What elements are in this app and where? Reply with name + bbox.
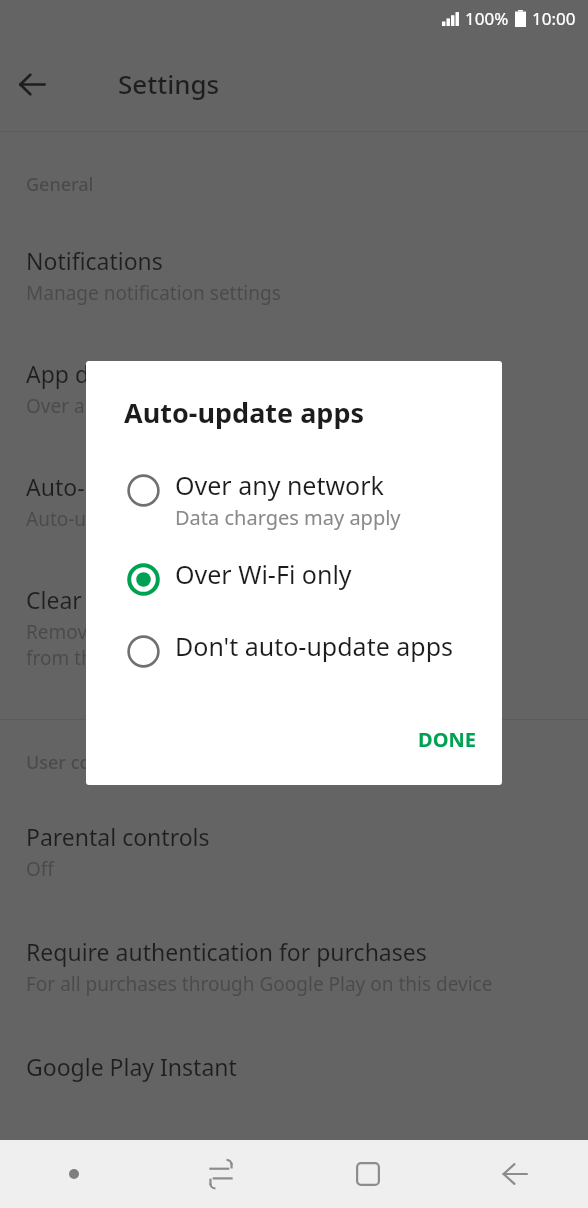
staticText: Over any network [175, 468, 384, 502]
staticText: Data charges may apply [175, 504, 401, 531]
button[interactable]: Back [0, 52, 64, 116]
staticText: App download preference [26, 358, 306, 389]
button[interactable]: Over Wi-Fi only [86, 554, 502, 604]
button[interactable]: Home [294, 1140, 441, 1208]
staticText: Over any network [26, 393, 185, 419]
staticText: 100% [465, 7, 509, 30]
button[interactable]: App download preference [0, 344, 588, 433]
staticText: General [26, 172, 94, 197]
staticText: Google Play Instant [26, 1051, 237, 1082]
staticText: Auto-update apps over Wi-Fi only [26, 506, 322, 532]
button[interactable]: Over any network [86, 465, 502, 540]
button[interactable]: Notifications [0, 231, 588, 320]
staticText: Auto-update apps [124, 394, 365, 431]
staticText: For all purchases through Google Play on… [26, 971, 493, 997]
button[interactable]: Clear local search history [0, 570, 588, 685]
button[interactable]: Parental controls [0, 807, 588, 896]
staticText: Over Wi-Fi only [175, 557, 352, 591]
button[interactable]: Don't auto-update apps [86, 626, 502, 676]
button[interactable]: Recent apps [147, 1140, 294, 1208]
staticText: 10:00 [532, 7, 576, 30]
button[interactable]: Require authentication for purchases [0, 922, 588, 1011]
button[interactable]: DONE [392, 716, 502, 763]
staticText: Require authentication for purchases [26, 936, 427, 967]
staticText: Notifications [26, 245, 163, 276]
button[interactable]: Auto-update apps [0, 457, 588, 546]
staticText: Manage notification settings [26, 280, 281, 306]
staticText: Parental controls [26, 821, 210, 852]
staticText: Don't auto-update apps [175, 629, 454, 663]
staticText: Clear local search history [26, 584, 296, 615]
button[interactable]: Google Play Instant [0, 1037, 588, 1096]
staticText: Remove the searches you have performed f… [26, 619, 403, 671]
button[interactable]: Assistant [0, 1140, 147, 1208]
staticText: Auto-update apps [26, 471, 220, 502]
staticText: Settings [118, 66, 220, 101]
staticText: DONE [418, 726, 476, 753]
staticText: Off [26, 856, 54, 882]
staticText: User controls [26, 750, 141, 775]
button[interactable]: Back [441, 1140, 588, 1208]
